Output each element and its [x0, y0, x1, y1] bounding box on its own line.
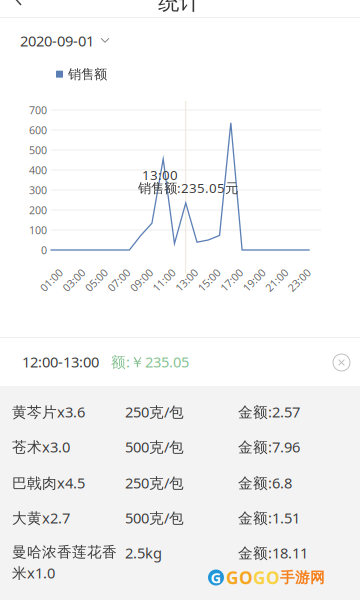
staticText: 13:00 [142, 166, 178, 184]
staticText: 11:00 [150, 273, 177, 287]
staticText: 金额:7.96 [238, 437, 300, 456]
staticText: 统计 [158, 0, 200, 15]
staticText: 500克/包 [125, 437, 184, 456]
staticText: 400 [29, 163, 47, 177]
staticText: 15:00 [195, 273, 222, 287]
staticText: 200 [29, 203, 47, 217]
staticText: 0 [41, 243, 47, 257]
staticText: 金额:1.51 [238, 508, 300, 527]
staticText: 09:00 [128, 273, 155, 287]
staticText: 曼哈浓香莲花香 [12, 543, 117, 561]
staticText: 黄芩片x3.6 [12, 402, 85, 421]
staticText: 500克/包 [125, 508, 184, 527]
staticText: 2020-09-01 [20, 31, 94, 50]
staticText: 600 [29, 123, 47, 137]
staticText: 100 [29, 223, 47, 237]
staticText: 300 [29, 183, 47, 197]
staticText: 07:00 [105, 273, 132, 287]
staticText: 17:00 [218, 273, 245, 287]
staticText: GO [253, 566, 280, 589]
staticText: 2.5kg [125, 543, 162, 562]
staticText: 250克/包 [125, 402, 184, 421]
button[interactable]: 2020-09-01 [20, 31, 109, 50]
staticText: 700 [29, 103, 47, 117]
staticText: 大黄x2.7 [12, 508, 70, 527]
staticText: 500 [29, 143, 47, 157]
staticText: 米x1.0 [12, 563, 55, 582]
staticText: GO [226, 566, 253, 589]
staticText: 苍术x3.0 [12, 437, 70, 456]
staticText: G [210, 568, 221, 587]
staticText: 销售额 [68, 66, 107, 82]
staticText: 23:00 [286, 273, 313, 287]
staticText: 05:00 [83, 273, 110, 287]
staticText: 额:￥235.05 [111, 352, 189, 371]
staticText: 21:00 [263, 273, 290, 287]
staticText: 金额:18.11 [238, 543, 308, 562]
staticText: 金额:2.57 [238, 402, 300, 421]
staticText: 03:00 [60, 273, 87, 287]
staticText: 01:00 [38, 273, 65, 287]
staticText: 19:00 [241, 273, 268, 287]
staticText: 12:00-13:00 [22, 352, 99, 371]
button[interactable]: Close [333, 354, 350, 371]
staticText: 巴戟肉x4.5 [12, 473, 85, 492]
staticText: 金额:6.8 [238, 473, 292, 492]
staticText: 13:00 [173, 273, 200, 287]
staticText: 手游网 [280, 568, 325, 586]
staticText: 销售额:235.05元 [138, 179, 238, 197]
staticText: 250克/包 [125, 473, 184, 492]
